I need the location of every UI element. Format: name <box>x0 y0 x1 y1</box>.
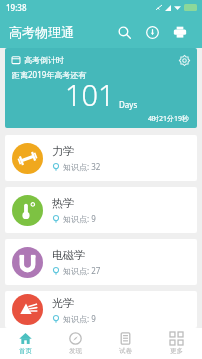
staticText: 热学 <box>52 196 74 210</box>
button[interactable]: 更多 <box>151 328 202 359</box>
button[interactable]: Settings <box>177 53 191 67</box>
staticText: 知识点: 9 <box>63 313 96 324</box>
button[interactable]: 试卷 <box>100 328 151 359</box>
staticText: 4时21分19秒 <box>148 114 190 124</box>
staticText: 高考物理通 <box>9 24 74 40</box>
staticText: 101 <box>65 75 115 114</box>
staticText: 知识点: 32 <box>63 161 101 172</box>
staticText: 力学 <box>52 144 74 158</box>
staticText: 19:38 <box>6 2 27 13</box>
button[interactable]: 光学 <box>5 291 197 328</box>
button[interactable]: 电磁学 <box>5 239 197 285</box>
staticText: 光学 <box>52 296 74 310</box>
button[interactable]: 高考倒计时 <box>5 48 197 128</box>
button[interactable]: 热学 <box>5 187 197 233</box>
button[interactable]: 发现 <box>50 328 100 359</box>
button[interactable]: Search <box>110 18 138 46</box>
staticText: 高考倒计时 <box>24 55 64 65</box>
staticText: 知识点: 27 <box>63 265 101 276</box>
staticText: 发现 <box>69 347 82 355</box>
button[interactable]: Download <box>138 18 166 46</box>
button[interactable]: 力学 <box>5 135 197 181</box>
staticText: 试卷 <box>119 347 132 355</box>
button[interactable]: 首页 <box>0 328 50 359</box>
staticText: 电磁学 <box>52 248 85 262</box>
staticText: Days <box>119 99 138 110</box>
staticText: 更多 <box>170 347 183 355</box>
staticText: 知识点: 9 <box>63 213 96 224</box>
button[interactable]: Print <box>166 18 194 46</box>
staticText: 首页 <box>19 347 32 355</box>
staticText: 距离2019年高考还有 <box>12 69 87 80</box>
